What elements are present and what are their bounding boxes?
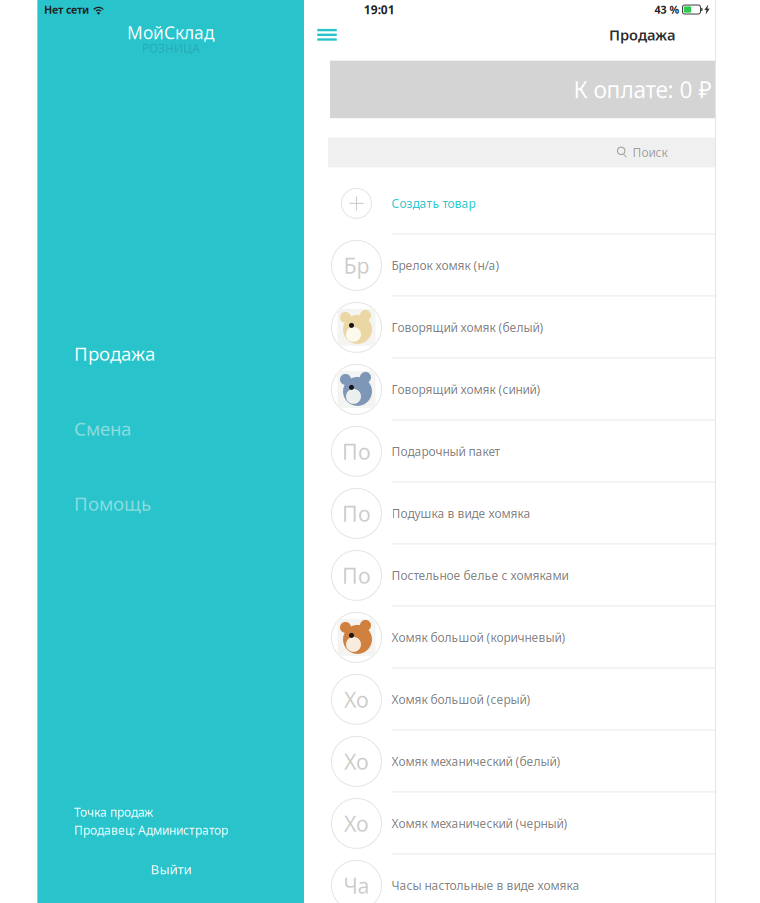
staticText: Говорящий хомяк (синий) <box>391 381 540 397</box>
button[interactable]: К оплате: 0 ₽ <box>330 61 760 118</box>
button[interactable]: По <box>304 482 760 544</box>
staticText: РОЗНИЦА <box>142 40 200 56</box>
button[interactable]: Хо <box>304 792 760 854</box>
staticText: Хо <box>344 809 369 837</box>
staticText: Хо <box>344 685 369 713</box>
button[interactable]: Помощь <box>38 466 304 541</box>
staticText: МойСклад <box>127 21 215 44</box>
staticText: Хомяк большой (серый) <box>391 691 530 707</box>
staticText: Постельное белье с хомяками <box>391 567 568 583</box>
staticText: Продажа <box>74 341 155 366</box>
staticText: Подарочный пакет <box>391 443 500 459</box>
button[interactable]: По <box>304 420 760 482</box>
button[interactable]: Продажа <box>38 316 304 391</box>
staticText: Бр <box>343 251 369 279</box>
staticText: Брелок хомяк (н/а) <box>391 257 499 273</box>
staticText: К оплате: 0 ₽ <box>573 74 711 104</box>
button[interactable]: Хомяк большой (коричневый) <box>304 606 760 668</box>
staticText: Смена <box>74 416 131 441</box>
staticText: По <box>342 499 371 527</box>
staticText: Часы настольные в виде хомяка <box>391 877 579 893</box>
button[interactable]: Бр <box>304 234 760 296</box>
staticText: Выйти <box>150 860 191 878</box>
staticText: Хомяк механический (белый) <box>391 753 560 769</box>
staticText: Продажа <box>609 25 676 45</box>
staticText: 43 % <box>654 2 679 17</box>
button[interactable]: По <box>304 544 760 606</box>
staticText: Подушка в виде хомяка <box>391 505 530 521</box>
staticText: По <box>342 437 371 465</box>
button[interactable]: Говорящий хомяк (синий) <box>304 358 760 420</box>
staticText: 19:01 <box>364 1 395 17</box>
staticText: Создать товар <box>391 195 475 211</box>
staticText: По <box>342 561 371 589</box>
staticText: Продавец: Администратор <box>74 822 228 838</box>
button[interactable]: Поиск <box>328 137 760 167</box>
staticText: Хомяк большой (коричневый) <box>391 629 565 645</box>
button[interactable]: Open menu <box>307 20 347 50</box>
staticText: Помощь <box>74 491 151 516</box>
staticText: Точка продаж <box>74 804 153 820</box>
staticText: Говорящий хомяк (белый) <box>391 319 543 335</box>
staticText: Нет сети <box>44 2 89 17</box>
staticText: Хомяк механический (черный) <box>391 815 567 831</box>
button[interactable]: Выйти <box>38 849 304 889</box>
button[interactable]: Говорящий хомяк (белый) <box>304 296 760 358</box>
button[interactable]: Ча <box>304 854 760 903</box>
staticText: Хо <box>344 747 369 775</box>
button[interactable]: Смена <box>38 391 304 466</box>
staticText: Поиск <box>632 144 667 160</box>
staticText: Ча <box>343 871 369 899</box>
button[interactable]: Хо <box>304 668 760 730</box>
button[interactable]: Хо <box>304 730 760 792</box>
button[interactable]: Создать товар <box>304 172 760 234</box>
